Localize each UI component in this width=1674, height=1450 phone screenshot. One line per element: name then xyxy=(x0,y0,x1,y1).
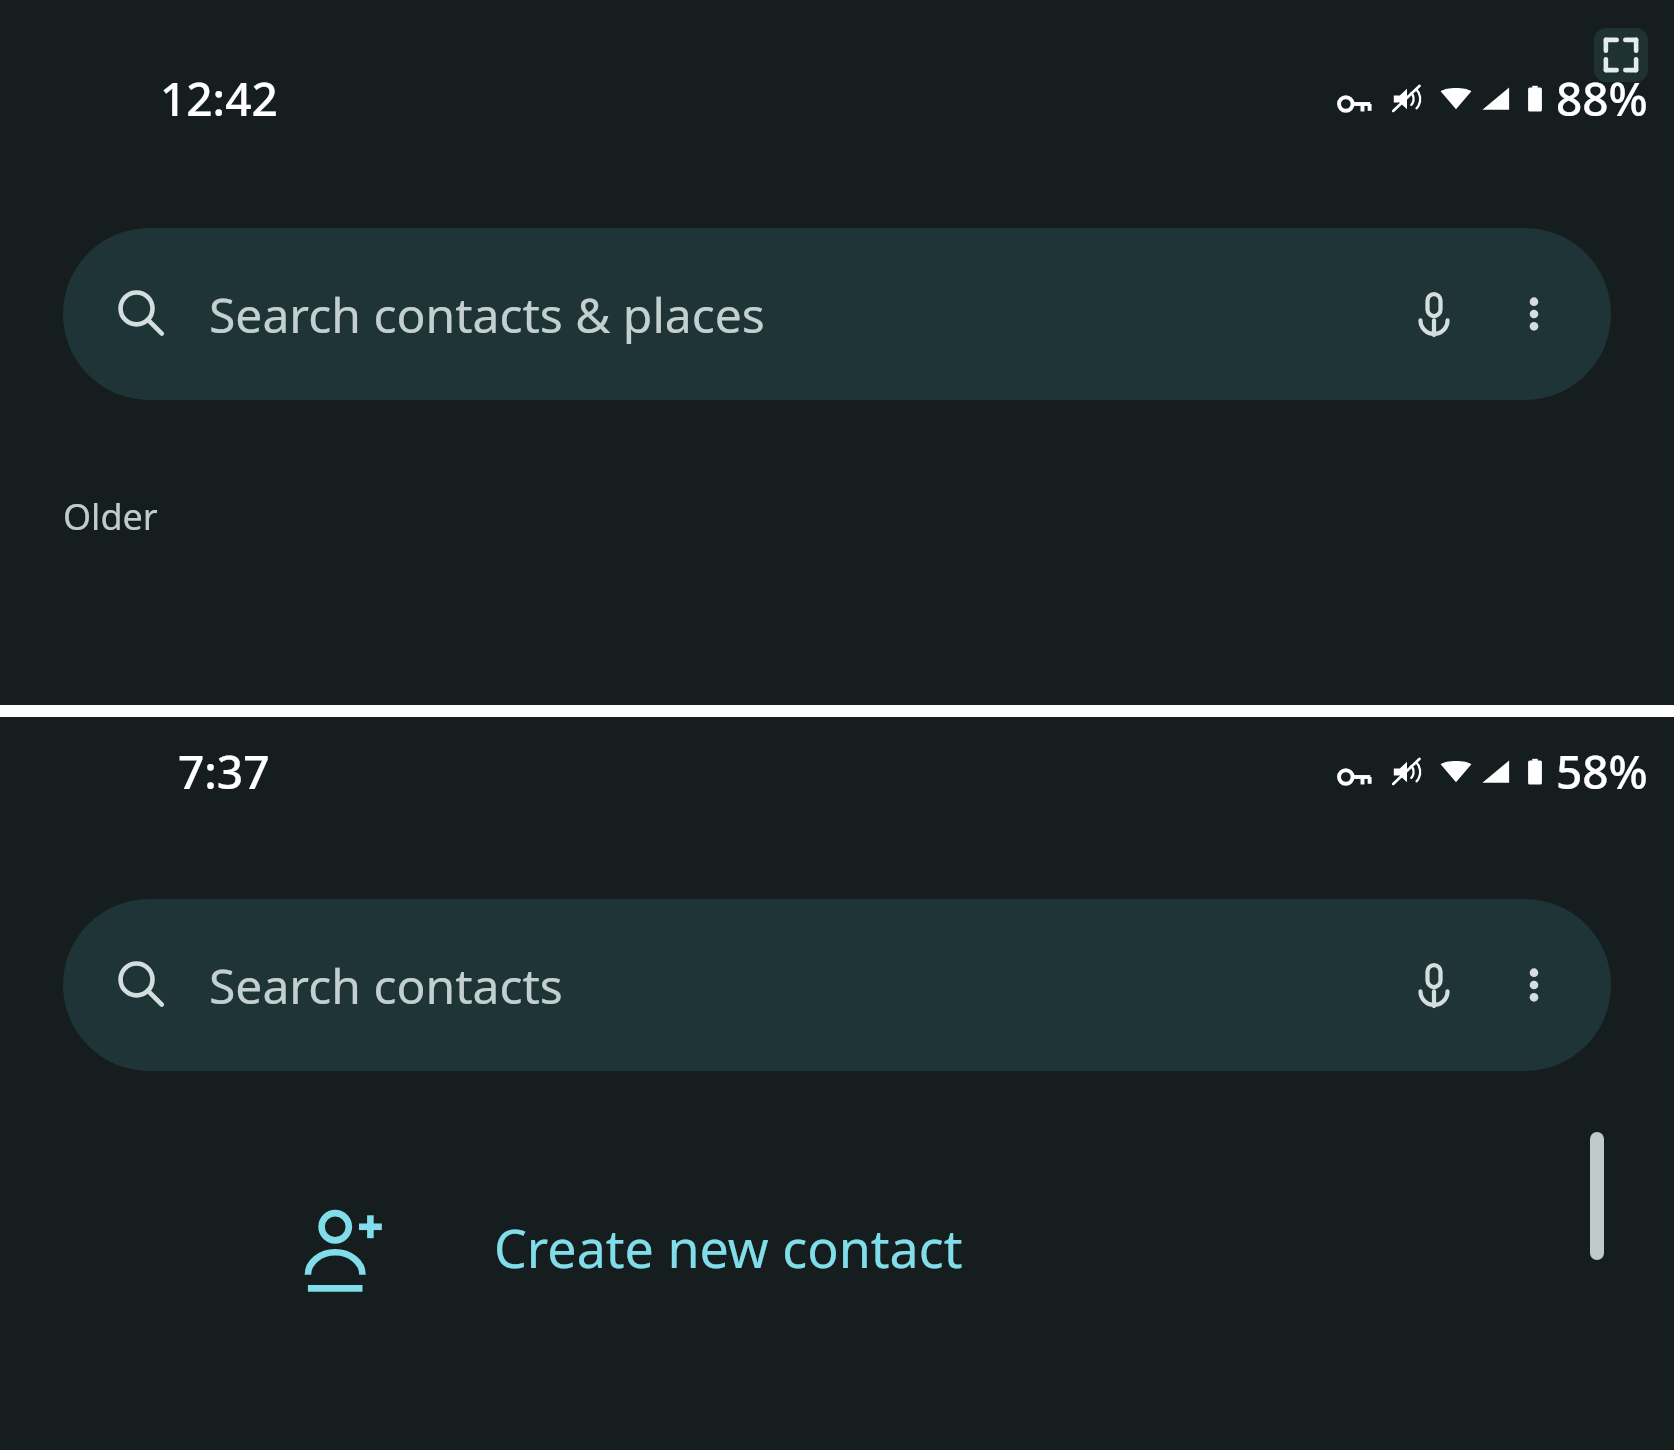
staticText: 58% xyxy=(1556,740,1648,803)
button[interactable]: Voice search xyxy=(1397,277,1471,351)
staticText: Search contacts & places xyxy=(209,282,1397,347)
staticText: 7:37 xyxy=(178,740,270,803)
button[interactable]: More options xyxy=(1497,948,1571,1022)
button[interactable]: Search contacts xyxy=(63,899,1611,1071)
button[interactable]: Fullscreen xyxy=(1594,28,1648,82)
staticText: Search contacts xyxy=(209,953,1397,1018)
button[interactable]: Voice search xyxy=(1397,948,1471,1022)
staticText: Older xyxy=(63,492,158,541)
button[interactable]: More options xyxy=(1497,277,1571,351)
staticText: 12:42 xyxy=(160,67,278,130)
button[interactable]: Search contacts & places xyxy=(63,228,1611,400)
staticText: Create new contact xyxy=(494,1212,963,1283)
staticText: 88% xyxy=(1556,67,1648,130)
button[interactable]: Create new contact xyxy=(0,1177,1674,1317)
